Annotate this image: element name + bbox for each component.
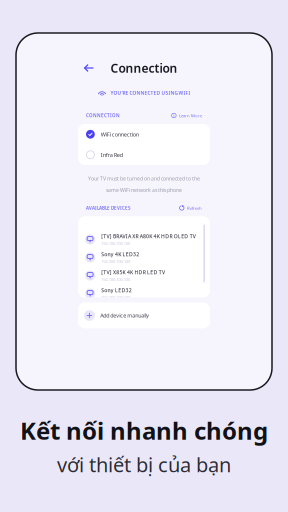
staticText: [TV] X85K 4K HDR LED TV xyxy=(101,269,165,276)
staticText: Sony LED32 xyxy=(101,287,132,294)
button[interactable]: Infra Red xyxy=(78,144,210,165)
button[interactable]: Learn More xyxy=(171,113,202,118)
button[interactable]: [TV] X85K 4K HDR LED TV xyxy=(78,266,210,284)
staticText: 192.100.100.100 xyxy=(101,276,130,282)
staticText: YOU'RE CONNECTED USING WIFI xyxy=(110,90,190,96)
button[interactable]: WiFi connection xyxy=(78,124,210,144)
button[interactable]: Sony 4K LED32 xyxy=(78,248,210,266)
staticText: 192.100.100.100 xyxy=(101,240,130,246)
staticText: AVAILABLE DEVICES xyxy=(86,205,130,211)
staticText: 192.200.100.100 xyxy=(101,294,130,300)
staticText: Kết nối nhanh chóng xyxy=(20,414,268,447)
staticText: [TV] BRAVIA XR A80K 4K HDR OLED TV xyxy=(101,233,196,240)
staticText: Add device manually xyxy=(100,312,149,319)
staticText: same WiFi network as this phone xyxy=(106,186,182,193)
button[interactable]: Refresh xyxy=(179,205,202,211)
staticText: 192.200.100.100 xyxy=(101,258,130,264)
staticText: Learn More xyxy=(179,113,202,118)
button[interactable]: Sony LED32 xyxy=(78,284,210,302)
button[interactable]: [TV] BRAVIA XR A80K 4K HDR OLED TV xyxy=(78,230,210,248)
staticText: Refresh xyxy=(187,205,202,211)
staticText: CONNECTION xyxy=(86,112,120,119)
staticText: WiFi connection xyxy=(101,130,139,138)
button[interactable]: Add device manually xyxy=(78,302,210,328)
staticText: với thiết bị của bạn xyxy=(57,451,231,478)
staticText: Your TV must be turned on and connected … xyxy=(88,175,200,182)
staticText: Connection xyxy=(110,60,177,76)
staticText: Sony 4K LED32 xyxy=(101,251,139,258)
staticText: Infra Red xyxy=(101,151,123,158)
button[interactable]: Back xyxy=(78,60,100,76)
